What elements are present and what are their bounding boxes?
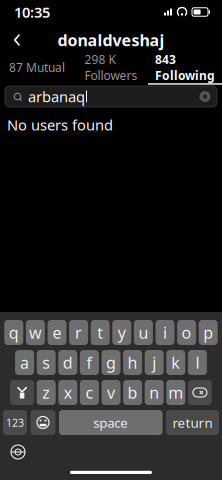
- button[interactable]: c: [80, 380, 99, 405]
- staticText: j: [152, 352, 156, 373]
- button[interactable]: return: [166, 410, 219, 435]
- button[interactable]: g: [101, 350, 120, 375]
- button[interactable]: w: [26, 320, 45, 345]
- button[interactable]: p: [199, 320, 218, 345]
- staticText: u: [138, 322, 148, 343]
- button[interactable]: Emoji: [30, 410, 55, 435]
- staticText: m: [168, 382, 183, 403]
- button[interactable]: Next keyboard: [3, 439, 33, 465]
- button[interactable]: l: [188, 350, 207, 375]
- button[interactable]: a: [15, 350, 34, 375]
- button[interactable]: 123: [3, 410, 27, 435]
- button[interactable]: q: [4, 320, 23, 345]
- button[interactable]: o: [177, 320, 196, 345]
- button[interactable]: i: [155, 320, 174, 345]
- button[interactable]: u: [134, 320, 153, 345]
- staticText: q: [9, 322, 19, 343]
- button[interactable]: 843 Following: [148, 57, 222, 79]
- staticText: w: [29, 322, 42, 343]
- staticText: i: [163, 322, 167, 343]
- button[interactable]: r: [69, 320, 88, 345]
- staticText: arbanaq: [28, 87, 85, 106]
- staticText: 843 Following: [155, 51, 215, 83]
- staticText: return: [172, 414, 212, 431]
- staticText: z: [42, 382, 50, 403]
- button[interactable]: j: [145, 350, 164, 375]
- button[interactable]: k: [166, 350, 185, 375]
- button[interactable]: m: [166, 380, 185, 405]
- staticText: space: [93, 414, 128, 431]
- button[interactable]: Clear text: [196, 87, 214, 105]
- staticText: donaldveshaj: [57, 29, 164, 51]
- button[interactable]: space: [59, 410, 162, 435]
- button[interactable]: h: [123, 350, 142, 375]
- button[interactable]: 87 Mutual: [0, 57, 74, 79]
- button[interactable]: t: [91, 320, 110, 345]
- button[interactable]: Shift: [10, 380, 34, 405]
- button[interactable]: y: [112, 320, 131, 345]
- button[interactable]: b: [123, 380, 142, 405]
- staticText: y: [118, 322, 126, 343]
- staticText: r: [75, 322, 82, 343]
- button[interactable]: v: [101, 380, 120, 405]
- button[interactable]: x: [58, 380, 77, 405]
- staticText: f: [86, 352, 92, 373]
- button[interactable]: e: [47, 320, 66, 345]
- staticText: No users found: [7, 115, 113, 134]
- staticText: c: [85, 382, 93, 403]
- staticText: 123: [6, 415, 24, 430]
- staticText: p: [203, 322, 213, 343]
- staticText: 298 K Followers: [84, 51, 137, 83]
- staticText: k: [171, 352, 180, 373]
- staticText: s: [42, 352, 50, 373]
- staticText: n: [149, 382, 159, 403]
- button[interactable]: Back: [0, 26, 34, 54]
- staticText: 87 Mutual: [9, 59, 65, 75]
- button[interactable]: n: [145, 380, 164, 405]
- button[interactable]: s: [37, 350, 56, 375]
- staticText: e: [52, 322, 61, 343]
- staticText: x: [64, 382, 72, 403]
- staticText: b: [128, 382, 138, 403]
- button[interactable]: d: [58, 350, 77, 375]
- staticText: d: [63, 352, 73, 373]
- staticText: 10:35: [14, 2, 50, 22]
- staticText: a: [20, 352, 29, 373]
- button[interactable]: Delete: [188, 380, 212, 405]
- button[interactable]: 298 K Followers: [74, 57, 148, 79]
- button[interactable]: z: [37, 380, 56, 405]
- staticText: h: [128, 352, 138, 373]
- staticText: o: [182, 322, 192, 343]
- button[interactable]: f: [80, 350, 99, 375]
- staticText: g: [106, 352, 116, 373]
- staticText: v: [107, 382, 115, 403]
- staticText: t: [97, 322, 103, 343]
- staticText: l: [195, 352, 199, 373]
